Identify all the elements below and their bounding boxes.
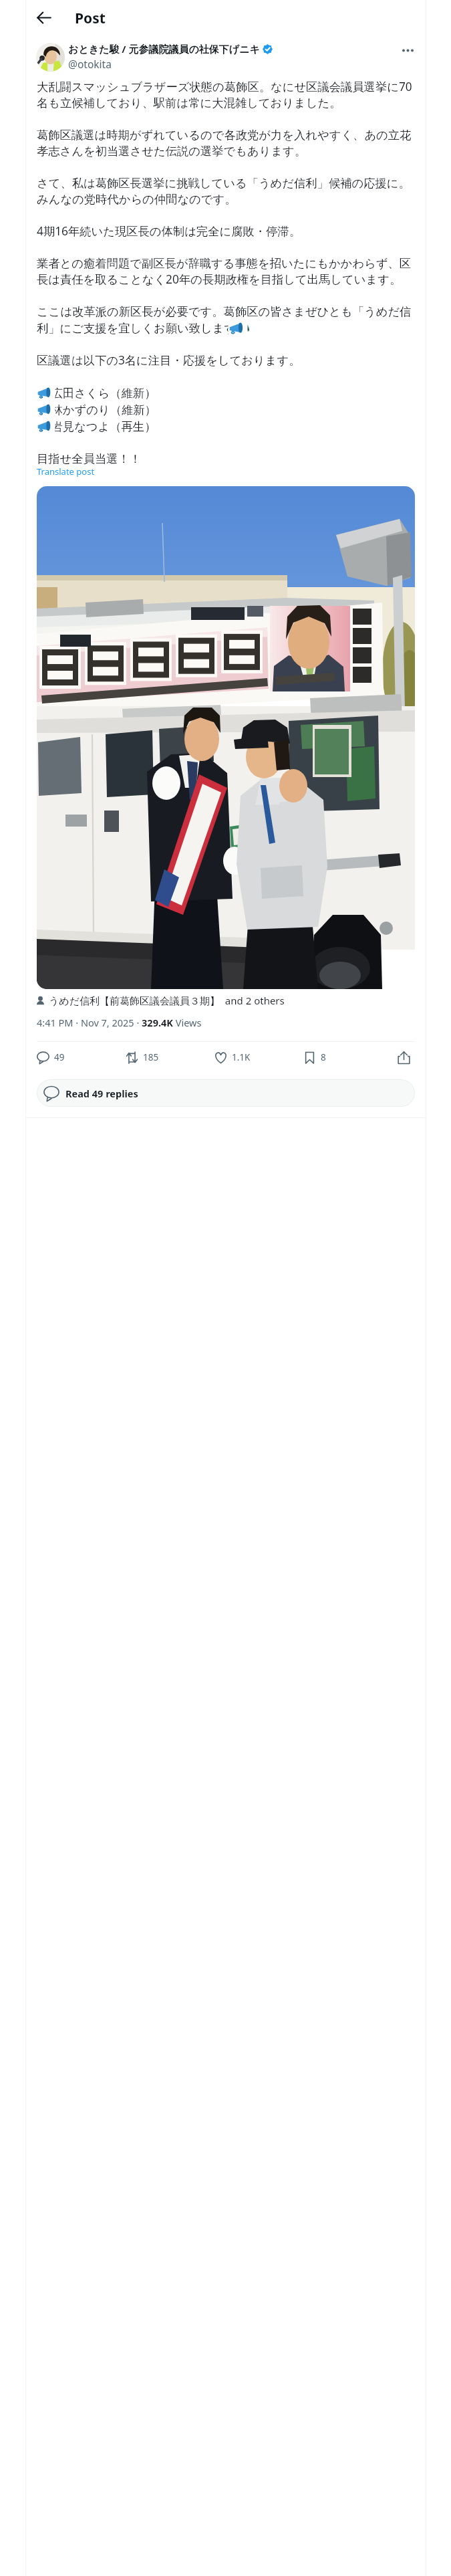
- button[interactable]: Read 49 replies: [37, 1079, 415, 1107]
- staticText: うめだ信利【前葛飾区議会議員３期】 and 2 others: [49, 994, 285, 1007]
- button[interactable]: うめだ信利【前葛飾区議会議員３期】 and 2 others: [35, 994, 285, 1007]
- button[interactable]: おときた駿 / 元参議院議員の社保下げニキ: [68, 42, 260, 56]
- staticText: Post: [75, 9, 106, 28]
- button[interactable]: @otokita: [68, 57, 112, 71]
- staticText: 185: [143, 1051, 159, 1063]
- staticText: 49: [54, 1051, 65, 1063]
- button[interactable]: Share: [392, 1046, 415, 1069]
- button[interactable]: More options: [396, 39, 419, 62]
- staticText: 8: [321, 1051, 326, 1063]
- button[interactable]: 8: [303, 1045, 392, 1070]
- button[interactable]: Post image: [37, 486, 415, 989]
- button[interactable]: Translate post: [37, 465, 95, 477]
- button[interactable]: Profile photo: [36, 43, 65, 72]
- button[interactable]: Back: [30, 4, 57, 31]
- staticText: 1.1K: [232, 1051, 251, 1063]
- button[interactable]: 1.1K: [214, 1045, 303, 1070]
- staticText: 大乱闘スマッシュブラザーズ状態の葛飾区。なにせ区議会議員選挙に70名も立候補して…: [37, 79, 415, 467]
- button[interactable]: 49: [37, 1045, 126, 1070]
- staticText: Read 49 replies: [65, 1087, 138, 1100]
- button[interactable]: 185: [126, 1045, 214, 1070]
- staticText: 4:41 PM · Nov 7, 2025 · 329.4K Views: [37, 1016, 202, 1029]
